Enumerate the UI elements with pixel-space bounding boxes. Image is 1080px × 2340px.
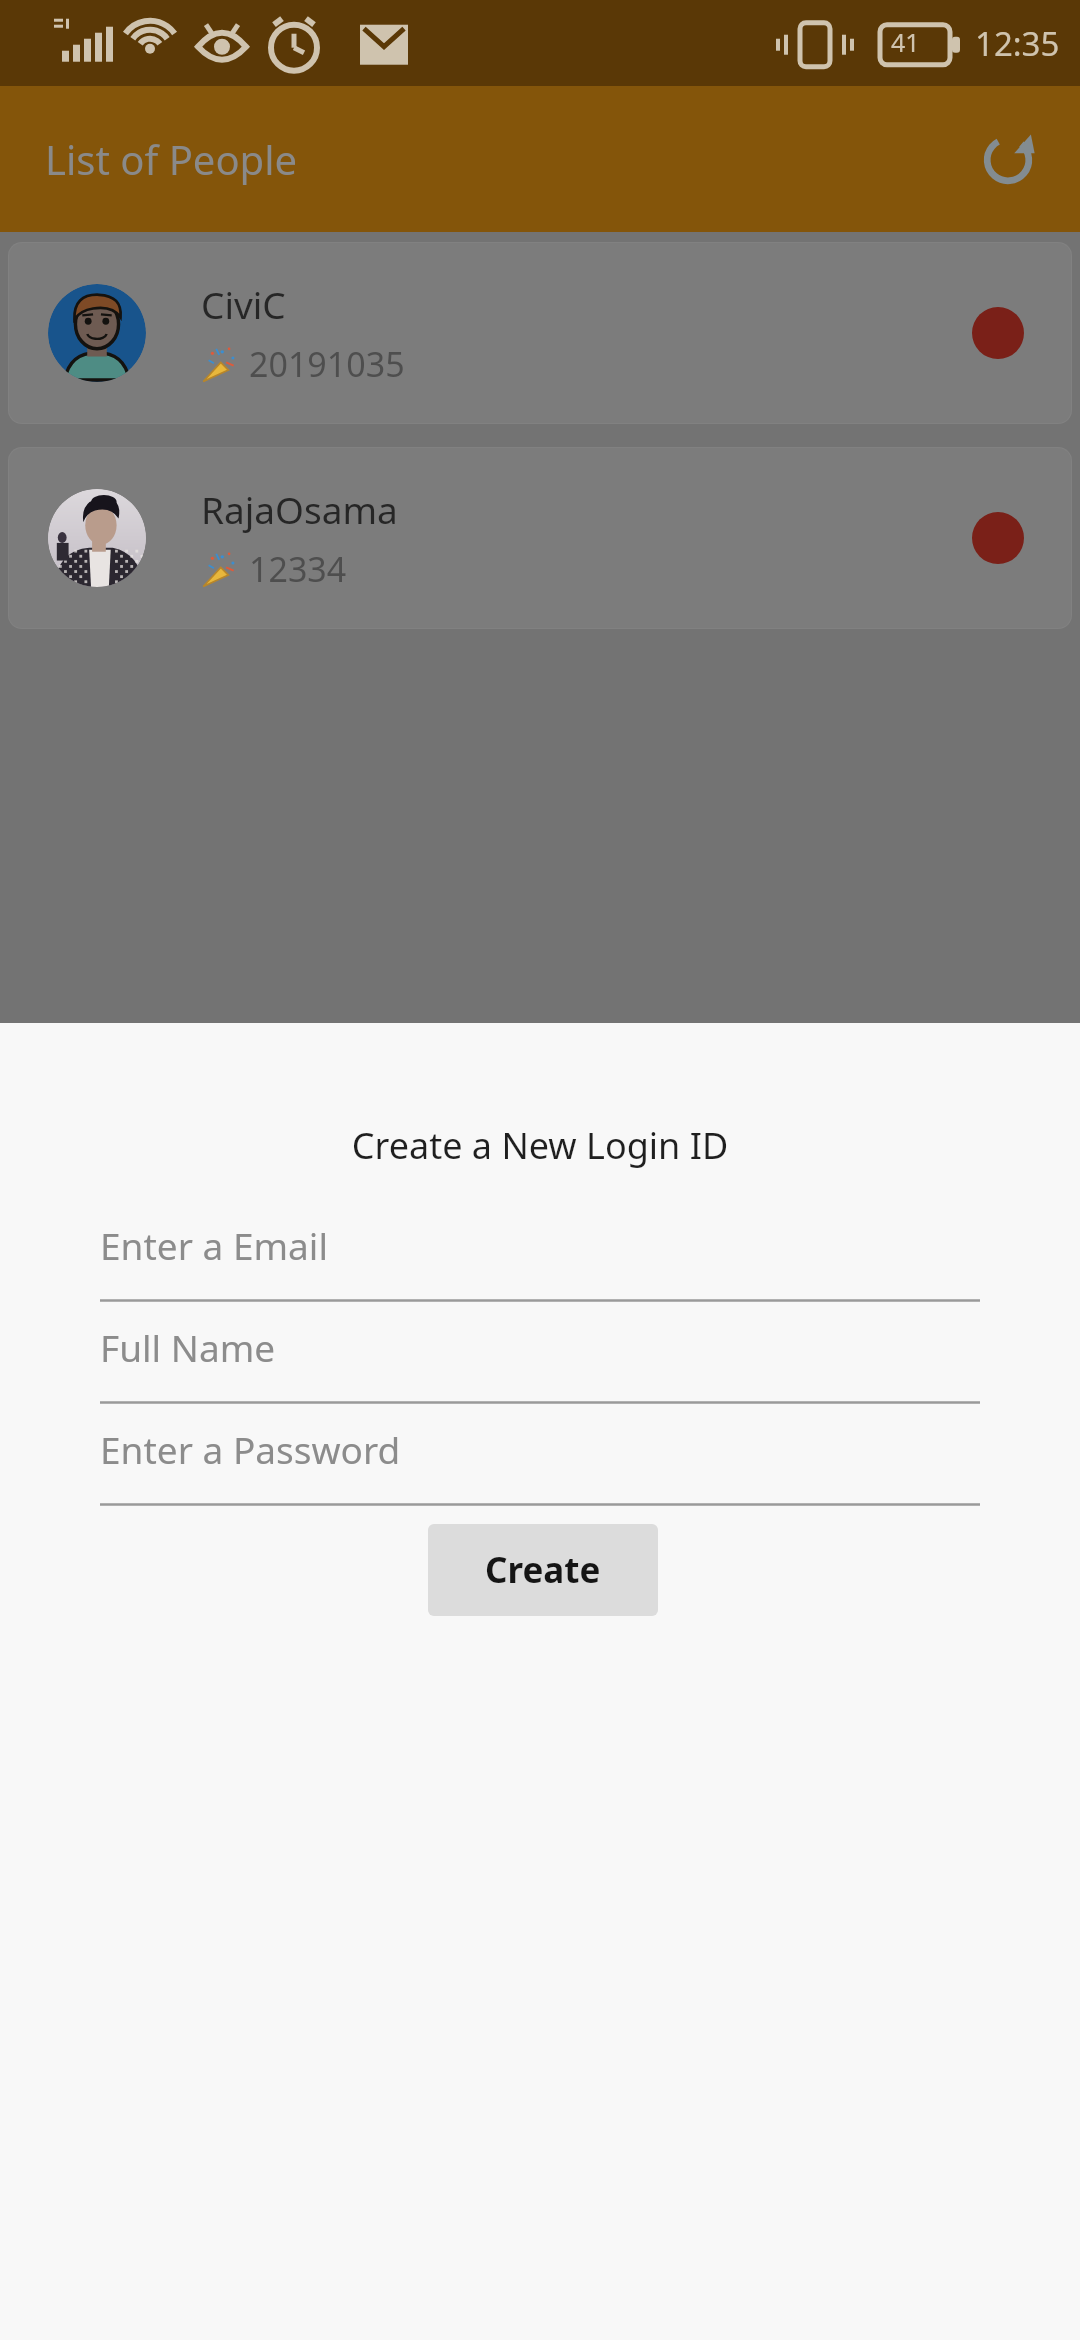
button[interactable]: RajaOsama [8,447,1072,629]
staticText: Create a New Login ID [0,1121,1080,1170]
staticText: 20191035 [249,341,405,387]
staticText: RajaOsama [201,484,398,534]
button[interactable]: Full Name [100,1302,980,1404]
staticText: Full Name [100,1322,276,1372]
button[interactable]: Enter a Password [100,1404,980,1506]
button[interactable]: Refresh [966,117,1050,201]
staticText: 12334 [249,546,347,592]
button[interactable]: Enter a Email [100,1200,980,1302]
button[interactable]: Status [972,512,1024,564]
staticText: CiviC [201,279,286,329]
staticText: List of People [45,132,298,186]
staticText: Enter a Email [100,1220,328,1270]
button[interactable]: Status [972,307,1024,359]
staticText: 41 [891,25,920,59]
button[interactable]: CiviC [8,242,1072,424]
button[interactable]: Create [428,1524,658,1616]
staticText: Create [485,1546,601,1594]
staticText: Enter a Password [100,1424,401,1474]
staticText: 12:35 [975,21,1060,66]
